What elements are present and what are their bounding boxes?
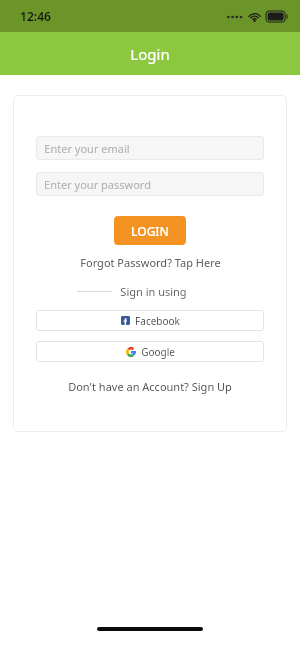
button[interactable]: Don't have an Account? Sign Up bbox=[68, 379, 232, 394]
button[interactable]: LOGIN bbox=[114, 216, 186, 245]
button[interactable]: Enter your password bbox=[36, 172, 264, 196]
button[interactable]: Google bbox=[36, 341, 264, 362]
staticText: Facebook bbox=[135, 314, 180, 328]
button[interactable]: Forgot Password? Tap Here bbox=[80, 255, 221, 270]
other: Google bbox=[126, 347, 136, 357]
button[interactable]: Enter your email bbox=[36, 136, 264, 160]
staticText: 12:46 bbox=[20, 8, 51, 24]
staticText: Enter your email bbox=[44, 141, 130, 156]
staticText: Google bbox=[141, 345, 175, 359]
staticText: Login bbox=[130, 44, 170, 64]
staticText: Enter your password bbox=[44, 177, 151, 192]
staticText: Sign in using bbox=[120, 284, 187, 299]
staticText: LOGIN bbox=[131, 223, 169, 239]
other: Facebook bbox=[121, 316, 130, 325]
button[interactable]: Facebook bbox=[36, 310, 264, 331]
